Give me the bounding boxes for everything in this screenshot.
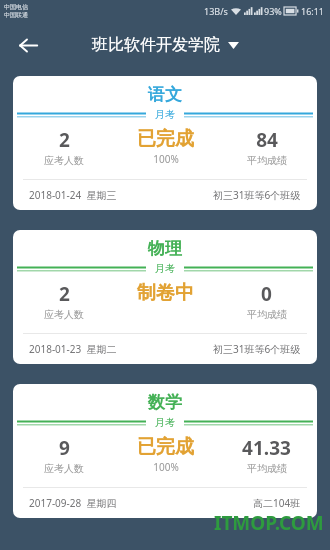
button[interactable]: 班比软件开发学院 (92, 35, 239, 55)
staticText: 初三31班等6个班级 (213, 342, 301, 356)
staticText: 月考 (155, 108, 175, 121)
staticText: 41.33 (242, 435, 291, 461)
staticText: ITMOP.COM (214, 510, 324, 536)
staticText: 应考人数 (44, 308, 84, 321)
button[interactable]: Back (8, 25, 48, 65)
staticText: 84 (256, 127, 278, 153)
button[interactable]: 数学 (13, 384, 317, 518)
staticText: 中国联通 (4, 11, 28, 19)
staticText: 已完成 (137, 127, 194, 151)
staticText: 班比软件开发学院 (92, 35, 220, 55)
staticText: 语文 (13, 84, 317, 105)
button[interactable]: 语文 (13, 76, 317, 210)
staticText: 中国电信 (4, 3, 28, 11)
staticText: 月考 (155, 262, 175, 275)
staticText: 高二104班 (253, 496, 301, 510)
staticText: 平均成绩 (247, 308, 287, 321)
staticText: 16:11 (301, 5, 325, 17)
staticText: 2018-01-23 星期二 (29, 342, 117, 356)
staticText: 9 (59, 435, 70, 461)
staticText: 2017-09-28 星期四 (29, 496, 117, 510)
staticText: 2018-01-24 星期三 (29, 188, 117, 202)
staticText: 13B/s (204, 5, 228, 17)
staticText: 平均成绩 (247, 154, 287, 167)
staticText: 物理 (13, 238, 317, 259)
staticText: 制卷中 (137, 281, 194, 305)
staticText: 100% (153, 152, 179, 166)
staticText: 0 (261, 281, 272, 307)
staticText: 月考 (155, 416, 175, 429)
staticText: 平均成绩 (247, 462, 287, 475)
staticText: 2 (59, 281, 70, 307)
staticText: 应考人数 (44, 462, 84, 475)
staticText: 应考人数 (44, 154, 84, 167)
button[interactable]: 物理 (13, 230, 317, 364)
staticText: 93% (264, 5, 282, 17)
staticText: 已完成 (137, 435, 194, 459)
staticText: 数学 (13, 392, 317, 413)
staticText: 初三31班等6个班级 (213, 188, 301, 202)
staticText: 2 (59, 127, 70, 153)
staticText: 100% (153, 460, 179, 474)
